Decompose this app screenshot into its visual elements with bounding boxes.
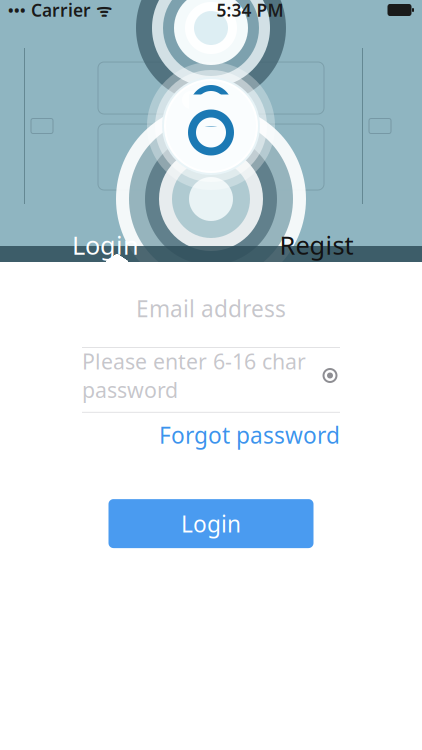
staticText: Forgot password [159,420,340,450]
button[interactable]: Please enter 6-16 char password [82,348,340,404]
staticText: Login [181,509,241,539]
staticText: Email address [136,293,286,323]
staticText: Please enter 6-16 char password [82,347,306,404]
staticText: Regist [279,228,353,262]
staticText: 5:34 PM [216,0,283,21]
staticText: Carrier [26,0,91,21]
button[interactable]: Login [108,499,313,548]
button[interactable]: Email address [82,270,340,348]
button[interactable]: Regist [211,228,422,262]
staticText: ᯤ [91,0,112,21]
button[interactable]: Forgot password [159,412,340,458]
button[interactable]: Login [0,228,211,262]
staticText: ••• [8,0,26,20]
staticText: Login [72,228,139,262]
